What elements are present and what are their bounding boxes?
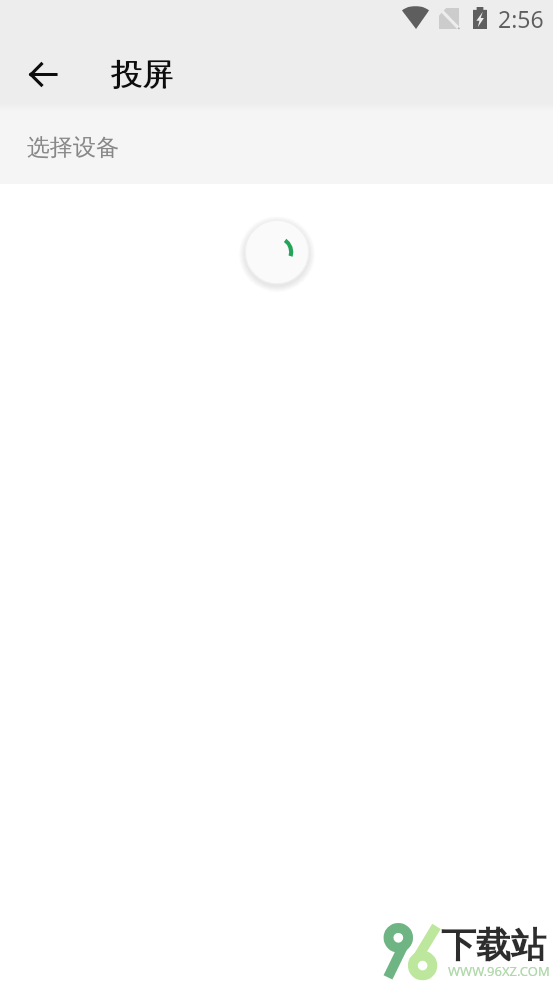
staticText: 2:56 (498, 3, 544, 34)
other: Searching for devices (237, 212, 317, 292)
button[interactable]: Back (15, 46, 71, 102)
staticText: WWW.96XZ.COM (448, 962, 550, 980)
staticText: 投屏 (112, 55, 174, 94)
other: Battery charging (473, 7, 487, 29)
staticText: 选择设备 (27, 133, 119, 162)
other: Wi-Fi (402, 7, 429, 29)
other: No SIM card (439, 8, 459, 29)
staticText: 下载站 (441, 923, 546, 967)
button[interactable]: 选择设备 (0, 104, 553, 184)
staticText: 投屏 (111, 55, 173, 94)
